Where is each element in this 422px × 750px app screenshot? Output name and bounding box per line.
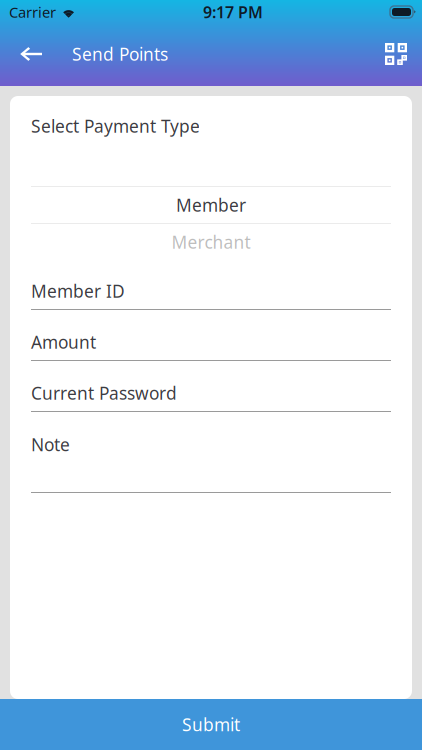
button[interactable]: Current Password: [31, 375, 391, 412]
staticText: Note: [31, 433, 70, 456]
staticText: Send Points: [72, 42, 168, 65]
button[interactable]: Merchant: [31, 224, 391, 260]
staticText: 9:17 PM: [203, 1, 263, 23]
staticText: Current Password: [31, 381, 177, 404]
button[interactable]: Member: [31, 187, 391, 223]
staticText: Carrier: [9, 2, 56, 22]
button[interactable]: Member ID: [31, 273, 391, 310]
staticText: Merchant: [171, 230, 250, 253]
staticText: Submit: [182, 713, 240, 736]
staticText: Member ID: [31, 279, 125, 302]
button[interactable]: Back: [10, 32, 52, 76]
button[interactable]: Amount: [31, 324, 391, 361]
button[interactable]: Note: [31, 426, 391, 493]
button[interactable]: Submit: [0, 699, 422, 750]
staticText: Member: [176, 193, 246, 216]
staticText: Select Payment Type: [31, 114, 200, 137]
staticText: Amount: [31, 330, 96, 353]
button[interactable]: Scan QR code: [375, 32, 417, 76]
